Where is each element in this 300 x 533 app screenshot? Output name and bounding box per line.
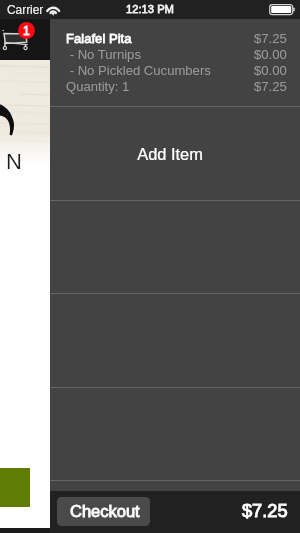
staticText: $7.25 bbox=[254, 31, 287, 46]
button[interactable]: Shopping cart bbox=[0, 26, 32, 52]
staticText: Quantity: 1 bbox=[66, 79, 130, 94]
staticText: Falafel Pita bbox=[66, 31, 132, 46]
staticText: $7.25 bbox=[242, 501, 288, 521]
button[interactable]: Checkout bbox=[57, 497, 150, 526]
staticText: $7.25 bbox=[254, 79, 287, 94]
staticText: Carrier bbox=[7, 3, 44, 16]
staticText: Checkout bbox=[70, 502, 140, 520]
staticText: 12:13 PM bbox=[0, 3, 300, 16]
staticText: Add Item bbox=[137, 145, 203, 163]
staticText: $0.00 bbox=[254, 47, 287, 62]
button[interactable] bbox=[50, 387, 300, 480]
staticText: - No Turnips bbox=[66, 47, 141, 62]
staticText: N bbox=[6, 149, 22, 174]
button[interactable] bbox=[50, 293, 300, 387]
button[interactable]: Add Item bbox=[50, 106, 300, 200]
staticText: - No Pickled Cucumbers bbox=[66, 63, 211, 78]
button[interactable] bbox=[50, 200, 300, 293]
staticText: 1 bbox=[23, 24, 30, 37]
staticText: $0.00 bbox=[254, 63, 287, 78]
button[interactable] bbox=[50, 480, 300, 533]
